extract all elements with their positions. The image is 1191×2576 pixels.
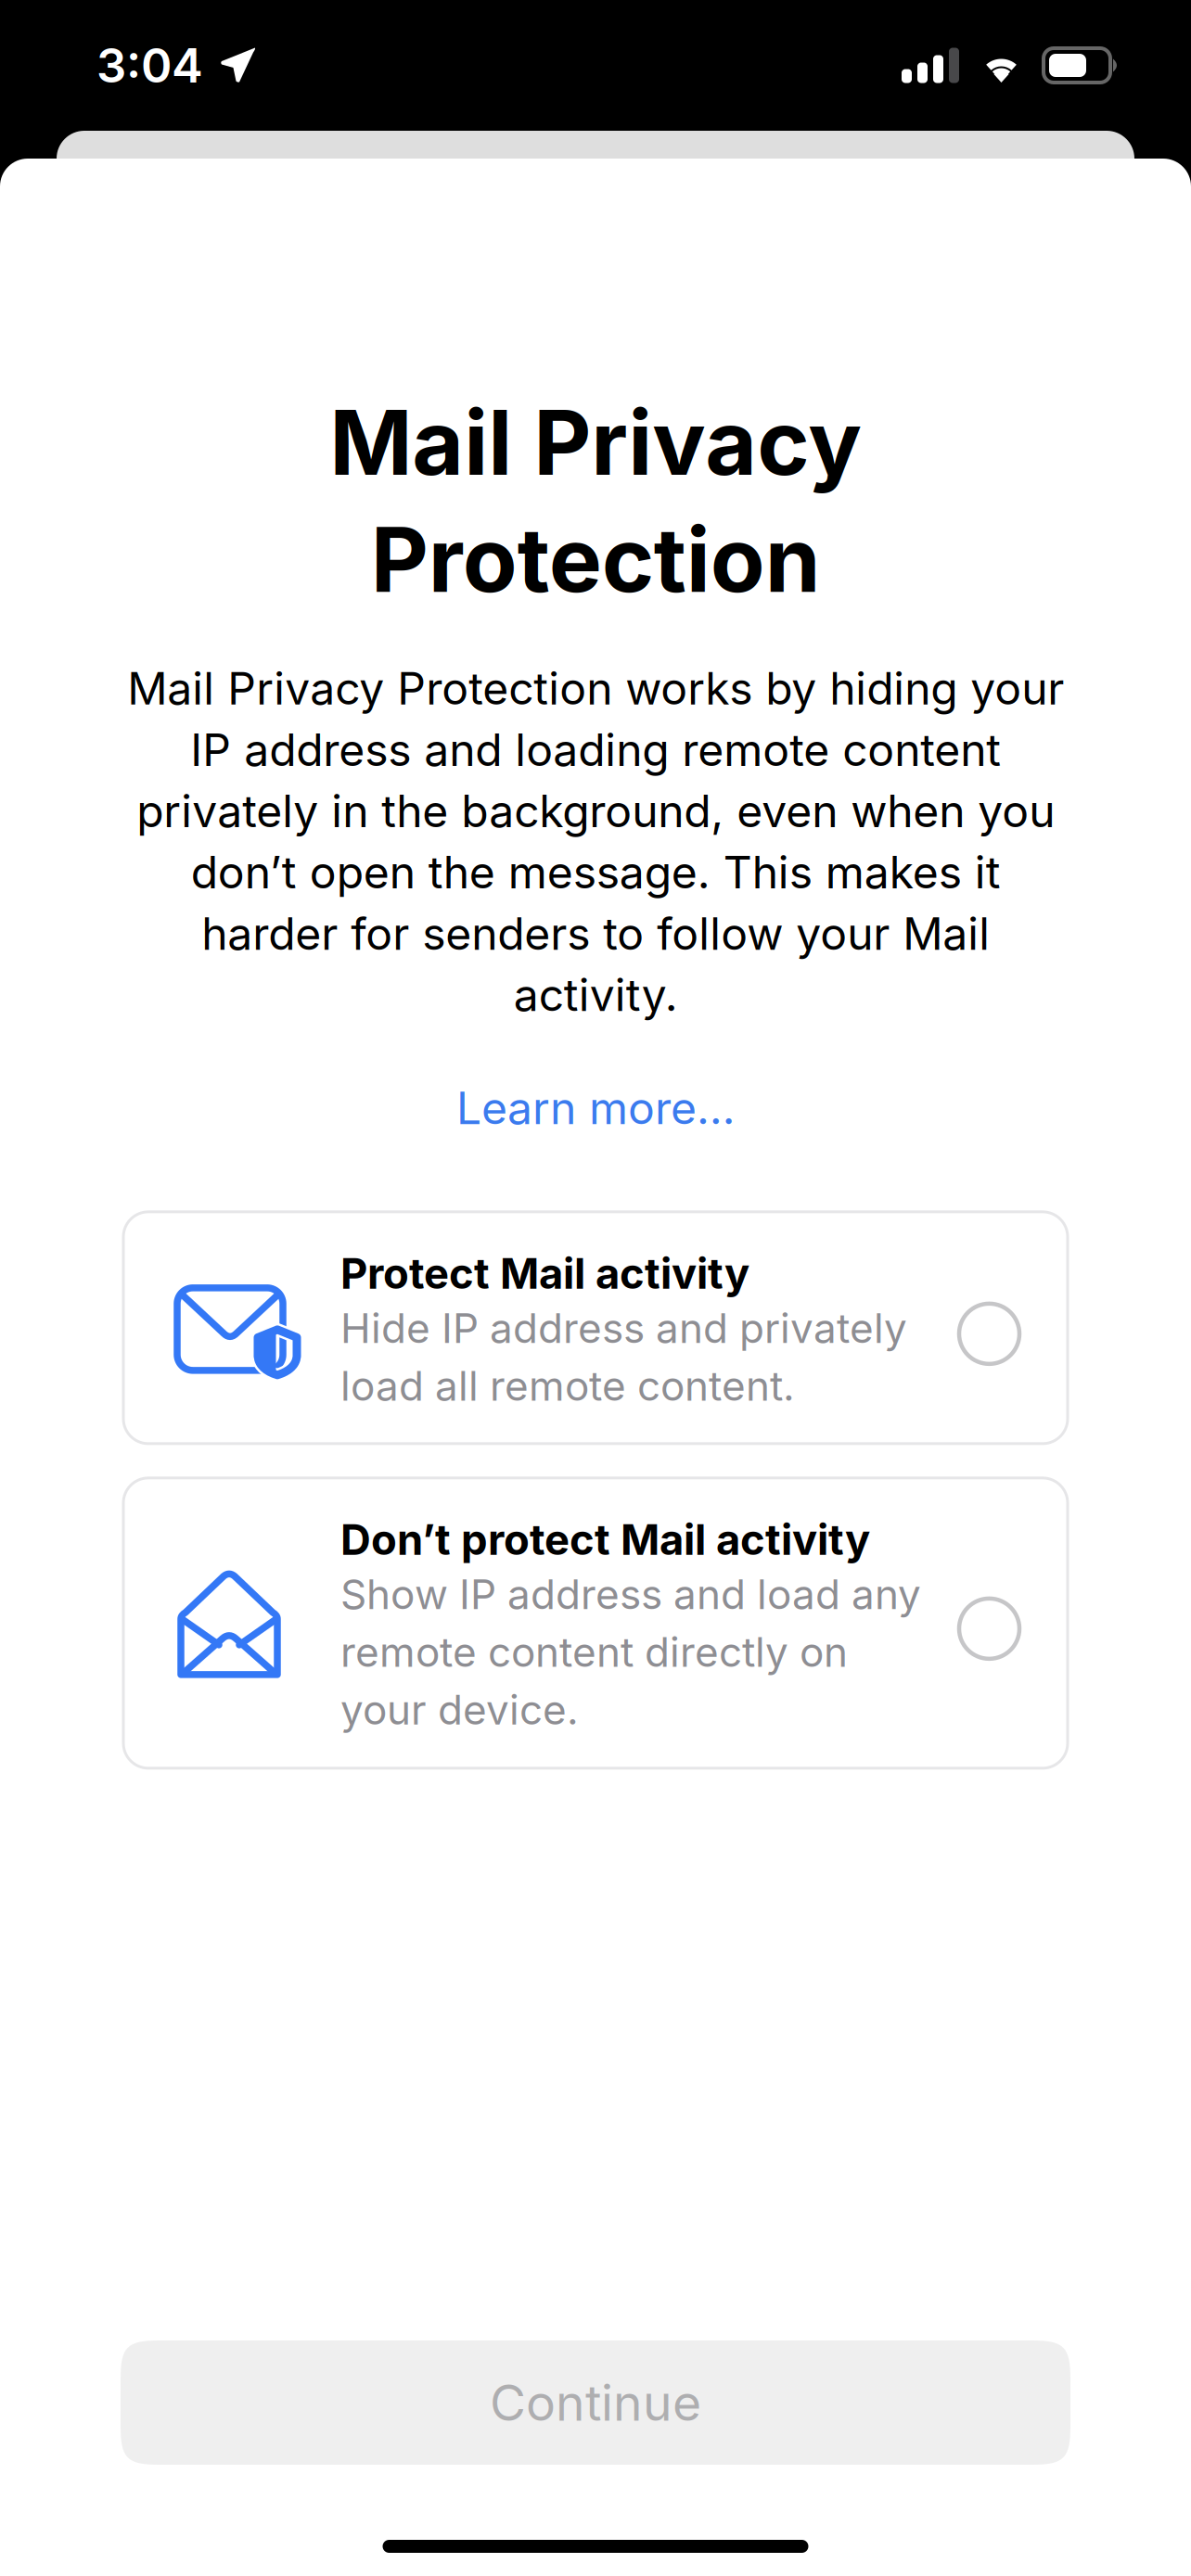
staticText: Continue <box>490 2373 701 2432</box>
staticText: Hide IP address and privately load all r… <box>340 1303 907 1411</box>
staticText: Don’t protect Mail activity <box>340 1514 870 1565</box>
button[interactable]: Protect Mail activity <box>123 1212 1068 1444</box>
staticText: Protect Mail activity <box>340 1248 749 1299</box>
staticText: Show IP address and load any remote cont… <box>340 1570 921 1734</box>
staticText: 3:04 <box>96 37 203 94</box>
button[interactable]: Don’t protect Mail activity <box>123 1478 1068 1768</box>
staticText: Mail Privacy Protection works by hiding … <box>127 661 1064 1022</box>
button[interactable]: Continue <box>121 2340 1070 2465</box>
staticText: Mail Privacy Protection <box>329 389 862 613</box>
staticText: Learn more… <box>456 1081 735 1135</box>
button[interactable]: Learn more… <box>429 1061 762 1155</box>
